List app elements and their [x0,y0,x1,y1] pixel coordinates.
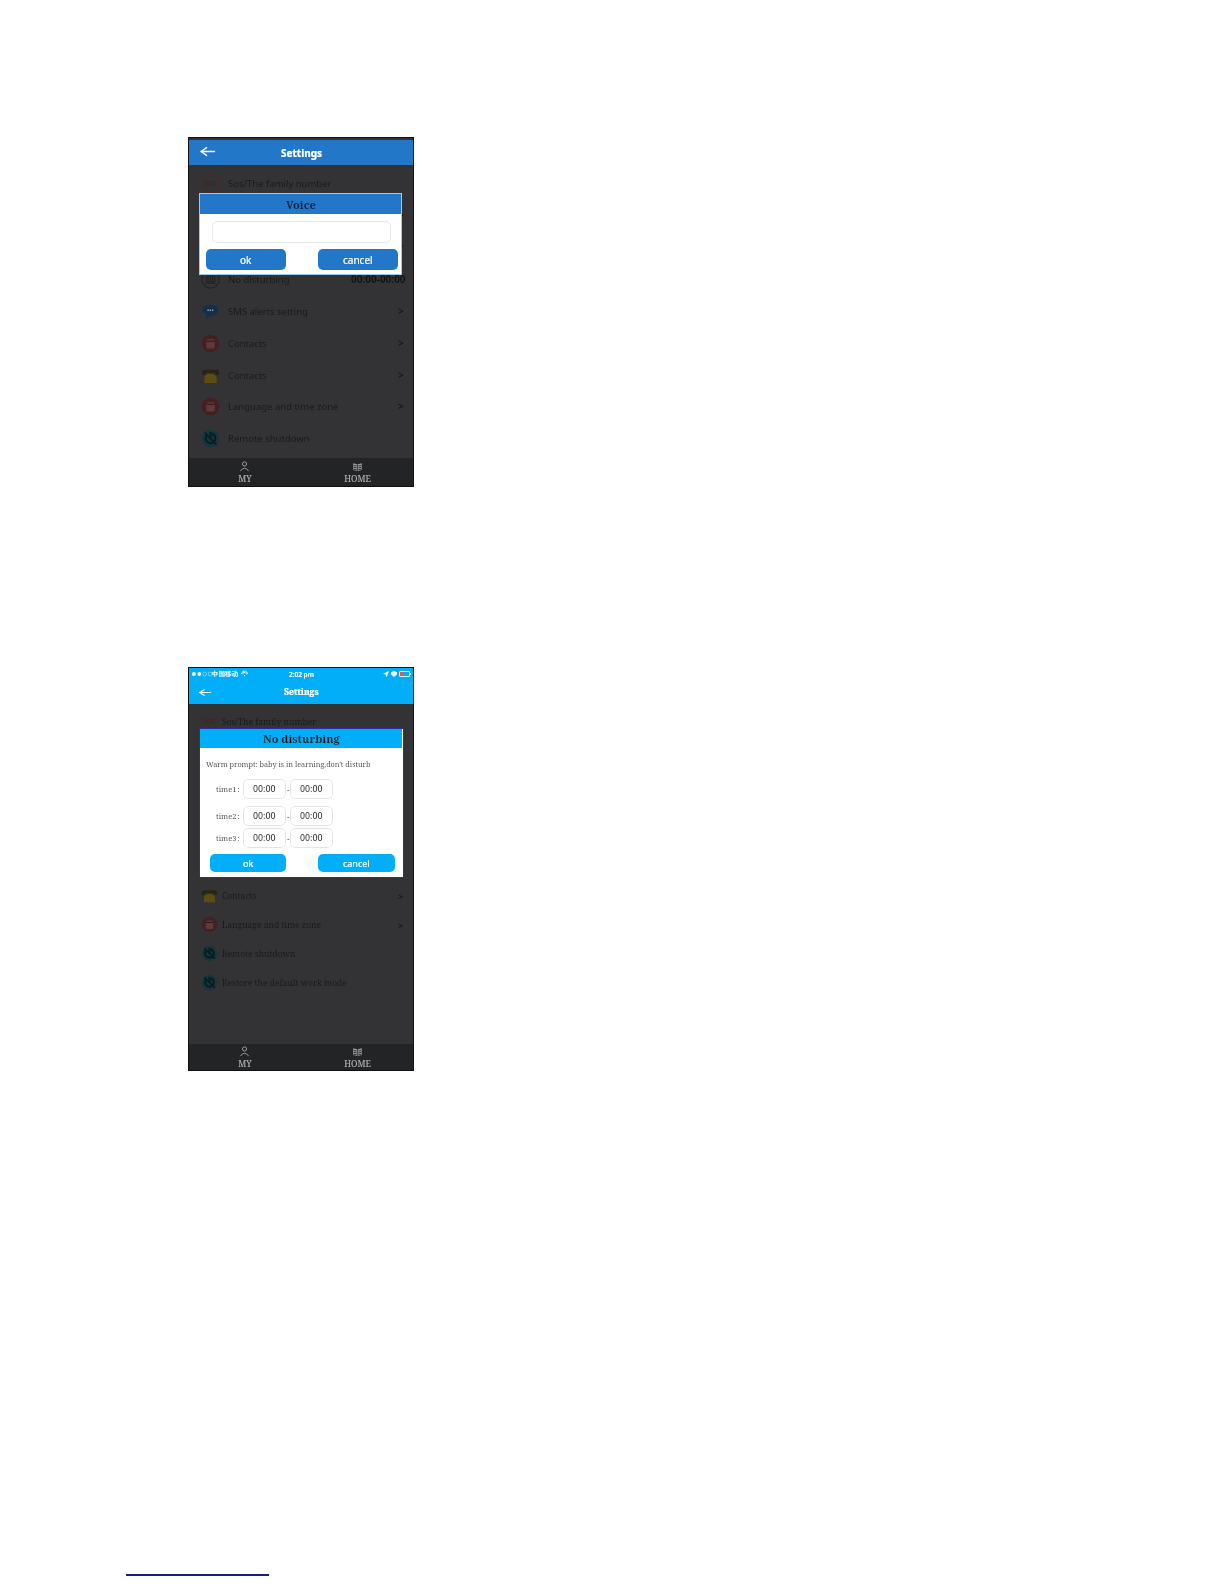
staticText: SMS alerts setting [222,832,294,844]
staticText: time3 : [216,833,240,843]
staticText: ··· [206,743,213,754]
staticText: 00:00 [253,832,276,844]
staticText: Language and time zone [228,400,339,413]
button[interactable]: Contacts [188,881,414,910]
staticText: > [398,336,404,350]
staticText: Language and time zone [222,919,322,931]
staticText: > [398,919,404,931]
staticText: ok [240,253,252,267]
staticText: Sos/The family number [228,177,332,190]
staticText: Settings [281,146,322,160]
staticText: Contacts [228,337,267,350]
button[interactable]: Remote shutdown [188,422,414,454]
button[interactable]: ok [210,854,286,872]
staticText: Alarm clock [228,240,280,253]
button[interactable]: ··· [188,199,414,231]
button[interactable]: SOS [188,167,414,199]
button[interactable]: Back [199,144,215,159]
button[interactable]: cancel [318,854,395,872]
staticText: 00:00 [253,783,276,795]
button[interactable]: Alarm clock [188,765,414,794]
staticText: 00:00-00:00 [351,272,406,286]
staticText: > [398,368,404,382]
button[interactable]: MY [188,458,301,487]
button[interactable]: ··· [188,295,414,327]
staticText: SOS [203,717,216,726]
staticText: cancel [343,857,370,869]
staticText: - [287,784,290,795]
staticText: 2:02 pm [289,670,314,679]
staticText: SOS [204,179,217,188]
button[interactable]: MY [188,1044,301,1071]
staticText: cancel [343,253,373,267]
staticText: Sos/The family number [222,716,317,728]
button[interactable]: Language and time zone [188,390,414,422]
staticText: time2 : [216,811,240,821]
staticText: Contacts [222,890,257,902]
button[interactable]: Restore the default work mode [188,968,414,997]
staticText: Remote shutdown [228,432,310,445]
staticText: Alarm clock [222,774,271,786]
staticText: > [398,399,404,413]
button[interactable]: Alarm clock [188,230,414,262]
staticText: 00:00 [300,783,323,795]
button[interactable]: ok [206,249,286,270]
button[interactable]: No disturbing [188,794,414,823]
staticText: 00:00 [253,810,276,822]
button[interactable]: HOME [301,1044,414,1071]
staticText: Contacts [228,369,267,382]
staticText: ··· [207,304,214,315]
staticText: Remote shutdown [222,948,296,960]
button[interactable]: ··· [188,736,414,765]
staticText: Voice [286,197,316,212]
staticText: Voice [222,745,244,757]
staticText: No disturbing [228,273,290,286]
staticText: > [398,745,404,757]
staticText: > [398,208,404,222]
button[interactable]: Contacts [188,359,414,391]
staticText: 00:00 [300,832,323,844]
staticText: > [398,774,404,786]
button[interactable]: Language and time zone [188,910,414,939]
button[interactable]: Back [198,687,211,698]
staticText: ok [243,857,254,869]
staticText: MY [238,473,252,485]
staticText: Warm prompt: baby is in learning,don't d… [206,759,371,769]
staticText: HOME [344,473,371,485]
button[interactable]: ··· [188,823,414,852]
staticText: Contacts [222,861,257,873]
staticText: HOME [344,1058,371,1070]
staticText: > [398,890,404,902]
staticText: MY [238,1058,252,1070]
button[interactable]: Contacts [188,852,414,881]
staticText: Restore the default work mode [222,977,347,989]
staticText: - [287,833,290,844]
button[interactable]: Contacts [188,327,414,359]
staticText: > [398,832,404,844]
staticText: > [398,304,404,318]
staticText: ··· [207,208,214,219]
staticText: No disturbing [263,731,340,746]
staticText: 中国移动 [212,670,238,678]
staticText: > [398,239,404,253]
button[interactable]: No disturbing [188,263,414,295]
staticText: SMS alerts setting [228,305,308,318]
button[interactable]: SOS [188,707,414,736]
button[interactable]: HOME [301,458,414,487]
button[interactable]: Remote shutdown [188,939,414,968]
staticText: time1 : [216,784,240,794]
staticText: 00:00 [300,810,323,822]
staticText: Voice [228,209,252,222]
staticText: > [398,861,404,873]
button[interactable]: cancel [318,249,398,270]
staticText: - [287,811,290,822]
staticText: Settings [284,686,319,698]
staticText: No disturbing [222,803,278,815]
